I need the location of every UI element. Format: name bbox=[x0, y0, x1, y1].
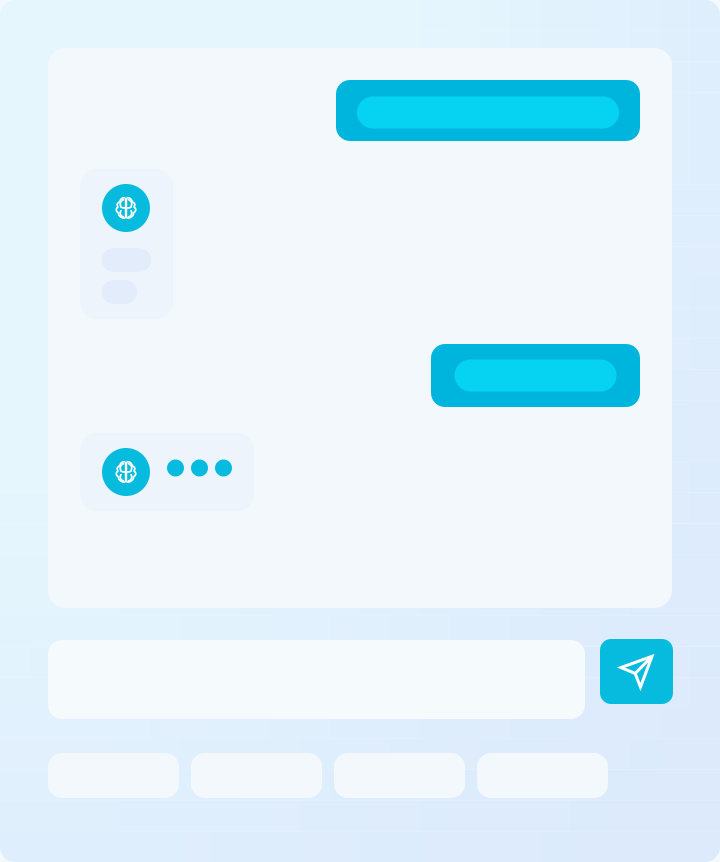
button[interactable]: Suggestion 1 bbox=[48, 753, 179, 798]
button[interactable]: Suggestion 4 bbox=[477, 753, 608, 798]
button[interactable]: Send bbox=[600, 639, 673, 704]
button[interactable] bbox=[80, 169, 173, 319]
button[interactable]: Suggestion 2 bbox=[191, 753, 322, 798]
button[interactable] bbox=[431, 344, 640, 407]
button[interactable] bbox=[336, 80, 640, 141]
button[interactable] bbox=[80, 433, 254, 511]
button[interactable]: Suggestion 3 bbox=[334, 753, 465, 798]
